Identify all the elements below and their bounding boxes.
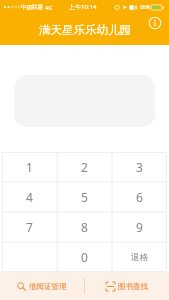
staticText: 上午10:14 [69, 3, 97, 11]
button[interactable]: 退格 [112, 242, 167, 272]
staticText: 图书查找 [118, 282, 148, 291]
staticText: 满天星乐乐幼儿园 [39, 23, 131, 37]
staticText: 6 [136, 189, 143, 205]
button[interactable]: 5 [57, 182, 112, 212]
staticText: 9 [136, 219, 143, 235]
button[interactable]: 2 [57, 152, 112, 182]
staticText: 退格 [131, 252, 148, 263]
staticText: 2 [81, 159, 88, 175]
button[interactable]: 1 [2, 152, 57, 182]
staticText: 8 [81, 219, 88, 235]
staticText: 借阅证管理 [29, 282, 67, 291]
button[interactable]: 6 [112, 182, 167, 212]
staticText: 0 [81, 249, 88, 265]
staticText: 1 [26, 159, 33, 175]
staticText: 3 [136, 159, 143, 175]
button[interactable]: 3 [112, 152, 167, 182]
staticText: 5 [81, 189, 88, 205]
staticText: 4 [26, 189, 33, 205]
button[interactable]: 7 [2, 212, 57, 242]
button[interactable]: 4 [2, 182, 57, 212]
staticText: 中国联通 [21, 4, 43, 11]
staticText: 66% [140, 4, 150, 11]
button[interactable]: Information [148, 16, 162, 30]
button[interactable]: 借阅证管理 [0, 272, 84, 300]
button[interactable] [2, 242, 57, 272]
staticText: 4G [45, 4, 53, 11]
staticText: 7 [26, 219, 33, 235]
button[interactable]: 8 [57, 212, 112, 242]
button[interactable]: 图书查找 [85, 272, 169, 300]
button[interactable]: 0 [57, 242, 112, 272]
button[interactable]: 9 [112, 212, 167, 242]
